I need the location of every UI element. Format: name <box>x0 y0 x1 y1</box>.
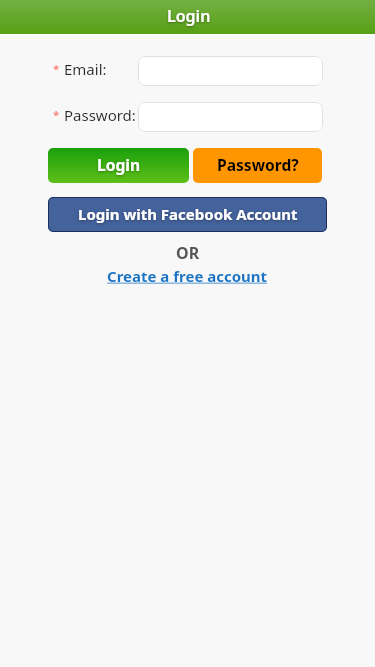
staticText: * <box>53 107 60 123</box>
staticText: Password: <box>64 105 136 125</box>
button[interactable]: Create a free account <box>105 265 270 287</box>
staticText: Login <box>97 154 141 175</box>
button[interactable]: Login with Facebook Account <box>48 197 327 232</box>
staticText: Password? <box>217 154 299 175</box>
button[interactable]: Password? <box>193 148 322 183</box>
staticText: OR <box>176 242 200 264</box>
button[interactable]: Password input field <box>138 102 323 132</box>
staticText: Email: <box>64 59 107 79</box>
staticText: Create a free account <box>107 266 268 286</box>
staticText: * <box>53 61 60 77</box>
staticText: Login with Facebook Account <box>78 204 298 224</box>
button[interactable]: Email input field <box>138 56 323 86</box>
button[interactable]: Login <box>48 148 189 183</box>
staticText: Login <box>167 5 211 27</box>
